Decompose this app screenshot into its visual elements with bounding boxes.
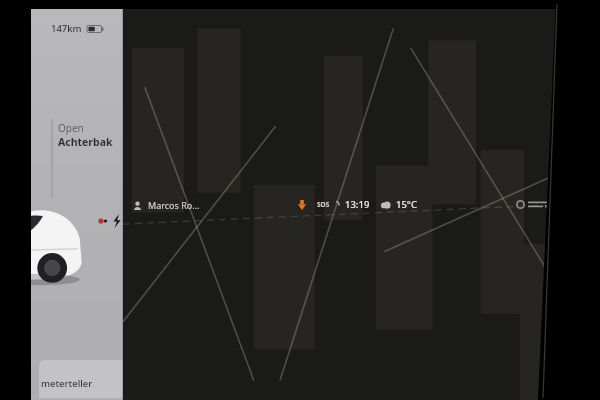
staticText: 147km <box>51 22 82 35</box>
other: Driver profile <box>132 200 143 211</box>
staticText: 15°C <box>396 198 417 211</box>
staticText: Achterbak <box>58 135 113 149</box>
button[interactable]: Open <box>55 119 116 151</box>
button[interactable]: SOS <box>316 199 331 210</box>
staticText: 13:19 <box>345 198 370 211</box>
button[interactable]: Driver profile <box>129 197 203 213</box>
other: Navigation <box>297 200 307 210</box>
button[interactable]: meterteller <box>39 360 131 398</box>
other: Weather <box>379 201 392 209</box>
button[interactable]: 147km <box>49 20 106 37</box>
staticText: Open <box>58 121 84 135</box>
staticText: Marcos Ro... <box>148 199 200 211</box>
staticText: SOS <box>317 200 330 209</box>
staticText: meterteller <box>41 377 93 390</box>
